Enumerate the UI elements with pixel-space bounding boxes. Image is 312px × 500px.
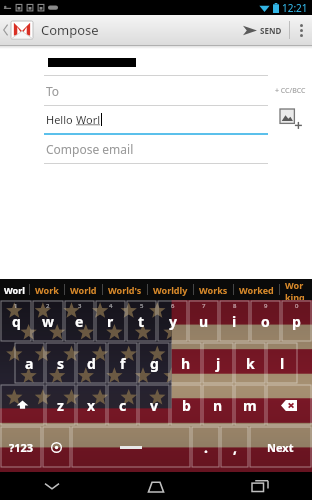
staticText: Compose email bbox=[46, 141, 134, 157]
staticText: b bbox=[182, 396, 191, 415]
button[interactable]: To bbox=[0, 76, 312, 105]
button[interactable]: 6 bbox=[158, 301, 187, 341]
staticText: 9 bbox=[264, 302, 268, 310]
staticText: c bbox=[119, 396, 127, 415]
staticText: m bbox=[243, 396, 257, 415]
staticText: p bbox=[292, 312, 301, 331]
button[interactable]: g bbox=[139, 343, 169, 383]
other: Back bbox=[2, 24, 9, 36]
staticText: y bbox=[169, 312, 177, 331]
staticText: To bbox=[46, 83, 60, 99]
staticText: 5 bbox=[140, 302, 144, 310]
staticText: e bbox=[75, 312, 84, 331]
staticText: h bbox=[181, 354, 191, 373]
button[interactable]: . bbox=[192, 427, 219, 467]
staticText: 0 bbox=[295, 302, 299, 310]
button[interactable]: Work bbox=[30, 284, 64, 296]
button[interactable]: 7 bbox=[189, 301, 218, 341]
staticText: Works bbox=[199, 284, 228, 296]
button[interactable]: n bbox=[203, 385, 233, 425]
button[interactable]: d bbox=[77, 343, 106, 383]
staticText: World bbox=[70, 284, 97, 296]
button[interactable]: 4 bbox=[96, 301, 125, 341]
button[interactable]: + CC/BCC bbox=[269, 82, 312, 100]
button[interactable]: 8 bbox=[220, 301, 249, 341]
staticText: g bbox=[150, 354, 159, 373]
button[interactable]: b bbox=[171, 385, 201, 425]
staticText: r bbox=[107, 312, 114, 331]
button[interactable]: 5 bbox=[127, 301, 156, 341]
button[interactable]: World bbox=[65, 284, 102, 296]
staticText: 3 bbox=[78, 302, 82, 310]
staticText: d bbox=[87, 354, 96, 373]
staticText: q bbox=[12, 312, 21, 331]
staticText: ?123 bbox=[9, 440, 34, 455]
staticText: v bbox=[150, 396, 158, 415]
button[interactable]: 1 bbox=[1, 301, 31, 341]
staticText: s bbox=[57, 354, 65, 373]
button[interactable]: Shift bbox=[1, 385, 44, 425]
button[interactable]: Attach photo bbox=[280, 109, 300, 131]
staticText: w bbox=[42, 312, 54, 331]
button[interactable]: l bbox=[267, 343, 297, 383]
staticText: j bbox=[216, 354, 221, 373]
button[interactable]: Worl bbox=[0, 284, 29, 296]
staticText: o bbox=[261, 312, 270, 331]
staticText: 12:21 bbox=[282, 1, 308, 15]
button[interactable]: Works bbox=[194, 284, 233, 296]
button[interactable]: h bbox=[171, 343, 201, 383]
button[interactable]: Working bbox=[280, 279, 312, 300]
staticText: + CC/BCC bbox=[275, 86, 306, 96]
staticText: 2 bbox=[46, 302, 50, 310]
button[interactable]: v bbox=[139, 385, 169, 425]
button[interactable]: x bbox=[77, 385, 106, 425]
staticText: a bbox=[25, 354, 34, 373]
button[interactable]: Hide keyboard bbox=[0, 472, 104, 500]
staticText: f bbox=[120, 354, 126, 373]
button[interactable]: More options bbox=[290, 15, 312, 45]
staticText: z bbox=[57, 396, 64, 415]
button[interactable]: Space bbox=[72, 427, 190, 467]
staticText: Working bbox=[285, 279, 307, 300]
button[interactable]: Next bbox=[250, 427, 311, 467]
button[interactable]: j bbox=[203, 343, 233, 383]
button[interactable]: 9 bbox=[251, 301, 280, 341]
button[interactable]: SEND bbox=[236, 15, 289, 45]
staticText: Worl bbox=[4, 284, 25, 296]
button[interactable]: a bbox=[15, 343, 44, 383]
button[interactable]: Back bbox=[0, 17, 105, 43]
button[interactable]: k bbox=[235, 343, 265, 383]
staticText: 4 bbox=[109, 302, 113, 310]
button[interactable]: s bbox=[46, 343, 75, 383]
staticText: Worldly bbox=[153, 284, 188, 296]
button[interactable]: 2 bbox=[33, 301, 63, 341]
button[interactable]: Home bbox=[104, 472, 208, 500]
button[interactable]: Worked bbox=[234, 284, 279, 296]
button[interactable]: m bbox=[235, 385, 265, 425]
button[interactable]: c bbox=[108, 385, 137, 425]
button[interactable]: Worldly bbox=[148, 284, 193, 296]
button[interactable]: 3 bbox=[65, 301, 94, 341]
button[interactable]: z bbox=[46, 385, 75, 425]
staticText: 1 bbox=[14, 302, 18, 310]
button[interactable]: Emoji bbox=[43, 427, 70, 467]
staticText: Next bbox=[267, 440, 294, 455]
button[interactable]: Recent apps bbox=[208, 472, 312, 500]
button[interactable]: ?123 bbox=[1, 427, 41, 467]
staticText: World's bbox=[108, 284, 142, 296]
staticText: 7 bbox=[202, 302, 206, 310]
staticText: n bbox=[213, 396, 223, 415]
button[interactable]: , bbox=[221, 427, 248, 467]
button[interactable]: Hello bbox=[0, 106, 312, 133]
button[interactable]: Delete bbox=[267, 385, 311, 425]
button[interactable]: Compose email bbox=[0, 135, 312, 163]
button[interactable]: 0 bbox=[282, 301, 311, 341]
staticText: Worl bbox=[76, 112, 101, 127]
staticText: x bbox=[87, 396, 96, 415]
staticText: Worked bbox=[239, 284, 274, 296]
staticText: t bbox=[138, 312, 145, 331]
button[interactable]: World's bbox=[103, 284, 147, 296]
staticText: u bbox=[199, 312, 209, 331]
button[interactable]: f bbox=[108, 343, 137, 383]
staticText: Hello bbox=[46, 112, 76, 127]
